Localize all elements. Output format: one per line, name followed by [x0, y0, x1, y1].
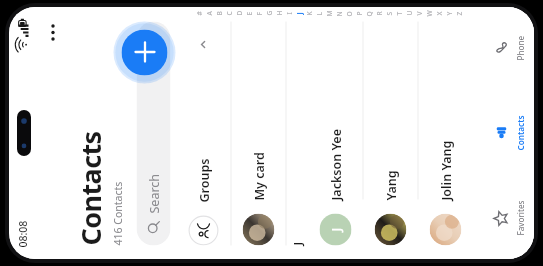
button[interactable]: Phone	[482, 7, 534, 90]
staticText: G	[264, 10, 273, 15]
staticText: A	[204, 10, 213, 15]
staticText: Contacts	[514, 114, 525, 150]
button[interactable]: Add contact	[121, 29, 167, 75]
staticText: C	[224, 10, 233, 15]
staticText: Q	[364, 10, 373, 16]
staticText: 416 Contacts	[110, 181, 124, 245]
button[interactable]: Search	[136, 21, 170, 245]
staticText: T	[394, 11, 403, 15]
staticText: W	[424, 9, 433, 16]
staticText: I	[284, 11, 293, 14]
staticText: 08:08	[15, 220, 29, 247]
staticText: O	[344, 10, 353, 16]
button[interactable]: Jolin Yang	[418, 21, 472, 259]
staticText: X	[434, 10, 443, 15]
staticText: Groups	[195, 158, 212, 202]
staticText: R	[374, 10, 383, 15]
staticText: Jolin Yang	[437, 140, 454, 200]
staticText: #	[194, 10, 203, 15]
staticText: Contacts	[71, 130, 108, 245]
staticText: Favorites	[514, 200, 525, 235]
staticText: Jackson Yee	[327, 128, 344, 200]
staticText: E	[244, 11, 253, 15]
staticText: L	[314, 11, 323, 15]
staticText: S	[384, 11, 393, 15]
button[interactable]: Alphabet index	[176, 7, 482, 21]
staticText: J	[294, 11, 303, 14]
staticText: F	[254, 11, 263, 15]
staticText: Search	[145, 173, 162, 213]
staticText: H	[274, 10, 283, 15]
staticText: D	[234, 10, 243, 15]
button[interactable]: Yang	[363, 21, 417, 259]
button[interactable]: Groups	[176, 37, 230, 245]
staticText: V	[414, 10, 423, 15]
button[interactable]: Contacts	[482, 90, 534, 175]
staticText: J	[326, 227, 344, 231]
staticText: Y	[444, 11, 453, 15]
staticText: B	[214, 10, 223, 15]
button[interactable]: More options	[35, 15, 69, 49]
staticText: My card	[250, 151, 267, 200]
staticText: Z	[454, 11, 463, 15]
staticText: U	[404, 10, 413, 15]
staticText: M	[324, 9, 333, 16]
button[interactable]: J	[308, 21, 362, 259]
staticText: N	[334, 10, 343, 16]
button[interactable]: Favorites	[482, 175, 534, 259]
staticText: K	[304, 10, 313, 15]
staticText: J	[289, 241, 305, 245]
staticText: P	[354, 10, 363, 15]
button[interactable]: My card	[231, 21, 285, 259]
staticText: Phone	[514, 35, 525, 60]
staticText: Yang	[382, 169, 399, 200]
